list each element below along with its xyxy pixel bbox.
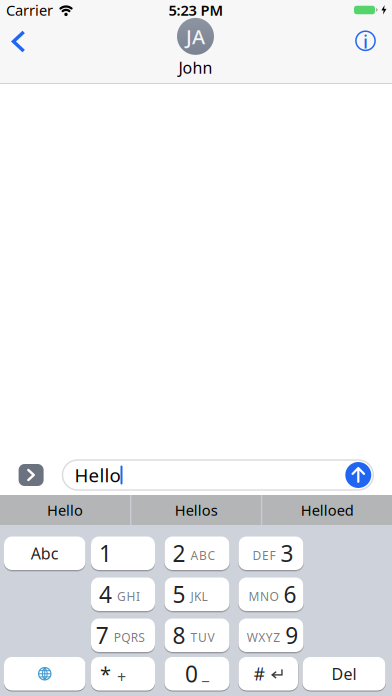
staticText: i: [363, 29, 368, 54]
staticText: JA: [186, 23, 205, 50]
staticText: 5: [172, 579, 185, 609]
staticText: PQRS: [114, 629, 145, 645]
staticText: MNO: [248, 588, 278, 604]
button[interactable]: Hellos: [131, 495, 261, 525]
staticText: +: [117, 666, 126, 687]
staticText: Hello: [74, 463, 120, 487]
staticText: GHI: [117, 588, 140, 604]
staticText: Abc: [31, 543, 59, 564]
staticText: WXYZ: [247, 629, 280, 645]
staticText: Carrier: [6, 0, 53, 20]
button[interactable]: 0: [164, 657, 229, 690]
button[interactable]: Next keyboard: [4, 657, 85, 690]
staticText: _: [202, 663, 209, 684]
button[interactable]: John, conversation details: [177, 18, 214, 78]
staticText: Hellos: [175, 500, 218, 520]
staticText: JKL: [190, 588, 207, 604]
staticText: Helloed: [301, 500, 354, 520]
button[interactable]: DEF: [238, 536, 303, 570]
staticText: 4: [99, 579, 112, 609]
staticText: #: [254, 662, 265, 685]
button[interactable]: 4: [91, 577, 155, 611]
staticText: Del: [331, 663, 356, 684]
staticText: 0: [185, 659, 198, 689]
staticText: *: [100, 660, 111, 687]
staticText: 7: [96, 620, 109, 650]
button[interactable]: Details: [345, 20, 386, 61]
button[interactable]: Send: [345, 462, 371, 488]
button[interactable]: 2: [164, 536, 229, 570]
button[interactable]: #: [238, 657, 298, 690]
button[interactable]: 7: [91, 618, 155, 652]
staticText: DEF: [252, 547, 275, 563]
button[interactable]: Abc: [4, 536, 85, 570]
staticText: ABC: [190, 547, 215, 563]
staticText: 8: [172, 620, 185, 650]
button[interactable]: App drawer: [19, 464, 44, 486]
button[interactable]: WXYZ: [238, 618, 303, 652]
staticText: John: [178, 57, 212, 78]
button[interactable]: Helloed: [262, 495, 392, 525]
button[interactable]: *: [91, 657, 155, 690]
staticText: TUV: [190, 629, 214, 645]
button[interactable]: 5: [164, 577, 229, 611]
staticText: 6: [283, 579, 296, 609]
staticText: 1: [99, 538, 112, 568]
button[interactable]: MNO: [238, 577, 303, 611]
button[interactable]: Back: [0, 21, 36, 61]
staticText: 3: [280, 538, 293, 568]
staticText: 5:23 PM: [168, 0, 223, 20]
staticText: 2: [172, 538, 185, 568]
button[interactable]: 8: [164, 618, 229, 652]
staticText: 9: [285, 620, 298, 650]
staticText: Hello: [47, 500, 83, 520]
button[interactable]: Hello: [0, 495, 130, 525]
button[interactable]: 1: [91, 536, 155, 570]
button[interactable]: Del: [302, 657, 385, 690]
